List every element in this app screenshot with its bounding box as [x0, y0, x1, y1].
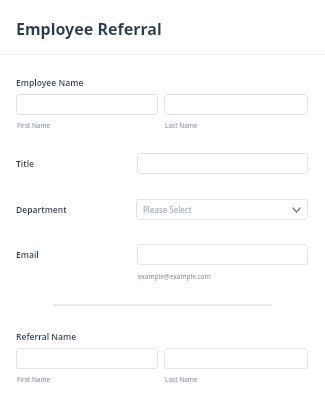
staticText: Please Select [143, 204, 192, 215]
button[interactable]: Referral first name [16, 348, 158, 369]
staticText: Last Name [165, 121, 198, 130]
staticText: Title [16, 158, 35, 170]
staticText: Last Name [165, 375, 198, 384]
button[interactable]: Employee first name [16, 94, 158, 115]
button[interactable]: Department [136, 199, 308, 220]
staticText: Referral Name [16, 331, 77, 343]
button[interactable]: Employee last name [164, 94, 308, 115]
staticText: Email [16, 249, 39, 261]
staticText: Department [16, 204, 67, 216]
staticText: Employee Referral [16, 18, 162, 40]
staticText: First Name [17, 375, 51, 384]
staticText: example@example.com [138, 272, 211, 281]
staticText: Employee Name [16, 77, 84, 89]
button[interactable]: Title [137, 153, 308, 174]
staticText: First Name [17, 121, 51, 130]
button[interactable]: Referral last name [164, 348, 308, 369]
button[interactable]: Email [137, 244, 308, 265]
